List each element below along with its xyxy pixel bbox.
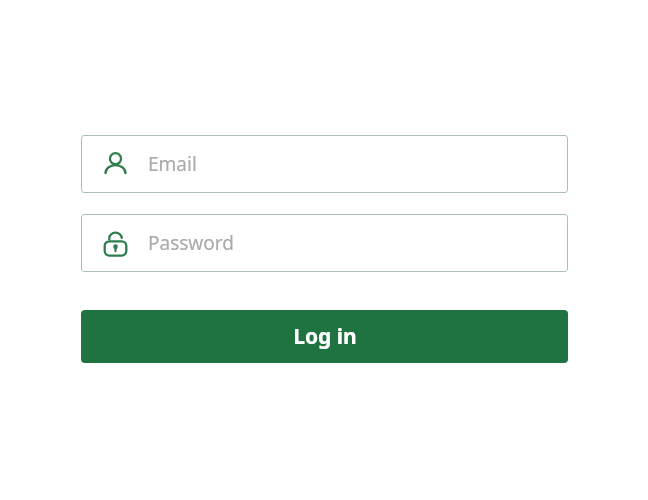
staticText: Password: [148, 230, 234, 256]
other: Password: [101, 229, 129, 257]
button[interactable]: Email: [81, 135, 568, 193]
staticText: Log in: [293, 322, 357, 351]
button[interactable]: Log in: [81, 310, 568, 363]
button[interactable]: Password: [81, 214, 568, 272]
staticText: Email: [148, 151, 197, 177]
other: Email: [101, 150, 129, 178]
